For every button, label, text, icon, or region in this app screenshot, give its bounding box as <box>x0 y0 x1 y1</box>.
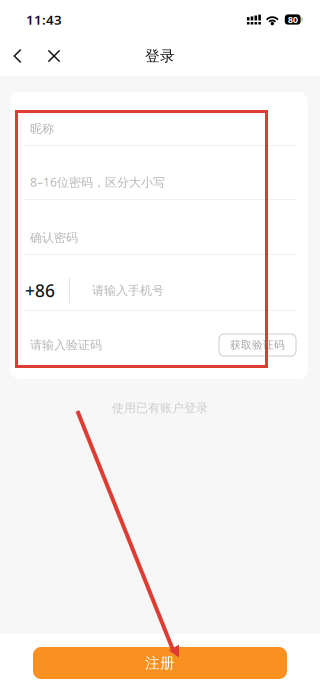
staticText: +86 <box>25 279 55 302</box>
staticText: 11:43 <box>26 11 62 28</box>
staticText: 确认密码 <box>30 230 78 245</box>
staticText: 使用已有账户登录 <box>112 401 208 415</box>
staticText: 获取验证码 <box>230 338 285 351</box>
staticText: 请输入手机号 <box>92 283 164 298</box>
button[interactable]: Close <box>35 36 73 76</box>
staticText: 8–16位密码，区分大小写 <box>30 174 165 190</box>
staticText: 昵称 <box>30 121 54 136</box>
staticText: 80 <box>288 13 298 26</box>
staticText: 注册 <box>145 654 175 672</box>
staticText: 登录 <box>145 47 175 65</box>
button[interactable]: Back <box>0 36 35 76</box>
button[interactable]: 获取验证码 <box>219 334 296 356</box>
staticText: 请输入验证码 <box>30 338 102 352</box>
button[interactable]: 注册 <box>33 647 287 679</box>
button[interactable]: 使用已有账户登录 <box>0 399 320 417</box>
